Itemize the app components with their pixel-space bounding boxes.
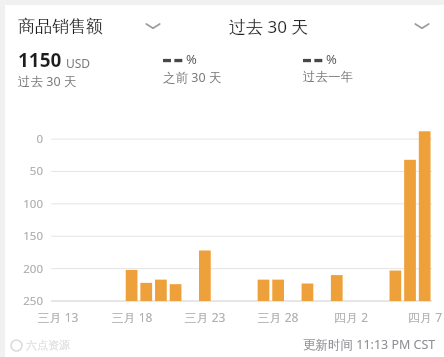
staticText: 1150: [18, 47, 62, 73]
staticText: %: [326, 50, 337, 68]
staticText: 四月 2: [320, 309, 382, 325]
staticText: USD: [66, 55, 91, 71]
staticText: 四月 7: [394, 309, 444, 325]
staticText: 过去一年: [303, 69, 353, 85]
staticText: 200: [5, 261, 43, 277]
staticText: 三月 23: [174, 309, 236, 325]
staticText: %: [186, 50, 197, 68]
staticText: 150: [5, 228, 43, 244]
staticText: 过去 30 天: [229, 15, 309, 38]
other: 展开选项: [414, 21, 430, 31]
staticText: 过去 30 天: [18, 73, 77, 90]
button[interactable]: 商品销售额: [5, 5, 211, 47]
staticText: 0: [5, 131, 43, 147]
staticText: 之前 30 天: [163, 69, 222, 86]
staticText: 三月 28: [247, 309, 309, 325]
staticText: 三月 18: [101, 309, 163, 325]
staticText: 六点资源: [26, 338, 70, 352]
other: 展开选项: [145, 21, 161, 31]
staticText: 商品销售额: [18, 16, 103, 37]
staticText: 250: [5, 293, 43, 309]
staticText: 100: [5, 196, 43, 212]
staticText: 50: [5, 163, 43, 179]
staticText: 三月 13: [27, 309, 89, 325]
button[interactable]: 过去 30 天: [211, 5, 444, 47]
staticText: 更新时间 11:13 PM CST: [303, 336, 436, 353]
